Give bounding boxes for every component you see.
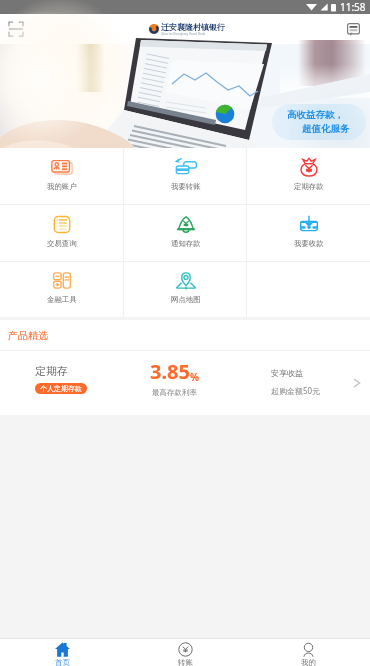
- button[interactable]: 金融工具: [0, 262, 124, 317]
- staticText: 11:58: [340, 0, 366, 14]
- button[interactable]: 网点地图: [124, 262, 247, 317]
- button[interactable]: 转账: [124, 639, 247, 666]
- staticText: 首页: [55, 658, 70, 666]
- staticText: %: [190, 370, 200, 384]
- staticText: 金融工具: [47, 295, 77, 304]
- staticText: 安享收益: [271, 368, 303, 378]
- staticText: 我要收款: [294, 239, 324, 248]
- staticText: 定期存款: [294, 182, 324, 191]
- staticText: Qian'an Xianglong Rural Bank: [161, 32, 206, 36]
- button[interactable]: 定期存: [0, 351, 370, 415]
- staticText: 迁安襄隆村镇银行: [161, 22, 225, 32]
- staticText: 起购金额50元: [271, 385, 321, 396]
- staticText: 网点地图: [171, 295, 201, 304]
- staticText: 通知存款: [171, 239, 201, 248]
- button[interactable]: 首页: [0, 639, 124, 666]
- button[interactable]: 通知存款: [124, 205, 247, 261]
- button[interactable]: 我的账户: [0, 148, 124, 204]
- button[interactable]: 交易查询: [0, 205, 124, 261]
- staticText: 交易查询: [47, 239, 77, 248]
- staticText: 最高存款利率: [152, 388, 197, 397]
- button[interactable]: 我要转账: [124, 148, 247, 204]
- staticText: 高收益存款，: [287, 109, 344, 121]
- staticText: 3.85: [150, 358, 190, 385]
- staticText: 产品精选: [8, 329, 48, 342]
- staticText: 我的账户: [47, 182, 77, 191]
- button[interactable]: Messages: [340, 16, 366, 42]
- button[interactable]: 我的: [247, 639, 370, 666]
- staticText: 转账: [178, 658, 193, 666]
- button[interactable]: 我要收款: [247, 205, 370, 261]
- button[interactable]: 定期存款: [247, 148, 370, 204]
- button[interactable]: Scan QR code: [3, 16, 29, 42]
- staticText: 超值化服务: [302, 123, 350, 135]
- staticText: 我要转账: [171, 182, 201, 191]
- staticText: 个人定期存款: [40, 384, 82, 393]
- staticText: 我的: [301, 658, 316, 666]
- staticText: 定期存: [35, 364, 68, 378]
